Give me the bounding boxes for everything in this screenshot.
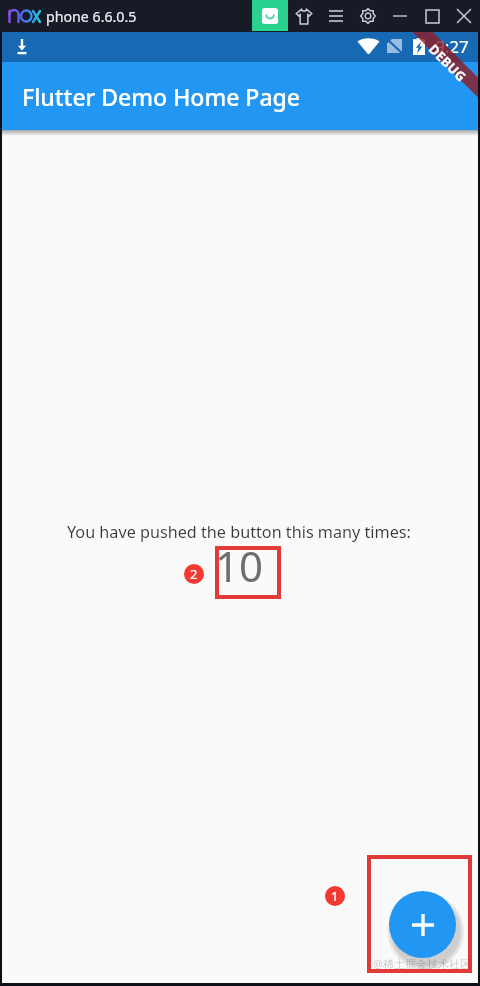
button[interactable]: Increment [389, 891, 456, 958]
staticText: 9:27 [435, 35, 469, 58]
staticText: 1 [331, 887, 339, 905]
button[interactable]: Settings [354, 2, 382, 30]
button[interactable]: Minimize [386, 2, 414, 30]
staticText: 10 [215, 537, 264, 594]
staticText: You have pushed the button this many tim… [67, 521, 411, 543]
button[interactable]: Apps [290, 2, 318, 30]
staticText: Flutter Demo Home Page [22, 81, 301, 112]
button[interactable]: App store [252, 0, 288, 31]
staticText: phone 6.6.0.5 [46, 7, 137, 26]
button[interactable]: Close [450, 2, 478, 30]
button[interactable]: Menu [322, 2, 350, 30]
staticText: 2 [190, 565, 198, 583]
staticText: @稀土掘金技术社区 [373, 956, 471, 971]
button[interactable]: Maximize [418, 2, 446, 30]
